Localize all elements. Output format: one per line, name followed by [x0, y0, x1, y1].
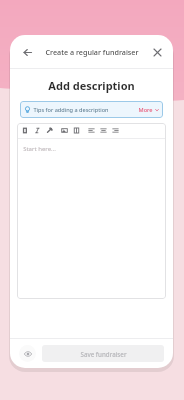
staticText: More — [138, 106, 153, 114]
button[interactable]: Preview — [19, 345, 36, 362]
button[interactable]: Close — [148, 43, 166, 61]
button[interactable]: Align right — [111, 126, 120, 135]
staticText: Tips for adding a description — [33, 106, 109, 114]
button[interactable]: Link — [45, 126, 54, 135]
staticText: Create a regular fundraiser — [45, 47, 139, 57]
button[interactable]: Start here... — [17, 139, 166, 299]
staticText: Save fundraiser — [80, 350, 127, 358]
button[interactable]: Italic — [33, 126, 42, 135]
staticText: Add description — [48, 78, 135, 93]
button[interactable]: Tips for adding a description — [20, 101, 163, 118]
button[interactable]: Align left — [87, 126, 96, 135]
button[interactable]: Insert video — [72, 126, 81, 135]
button[interactable]: Insert image — [60, 126, 69, 135]
button[interactable]: Bold — [21, 126, 30, 135]
staticText: Start here... — [23, 145, 56, 153]
button[interactable]: Back — [18, 43, 36, 61]
button[interactable]: Save fundraiser — [42, 345, 164, 362]
button[interactable]: Align center — [99, 126, 108, 135]
